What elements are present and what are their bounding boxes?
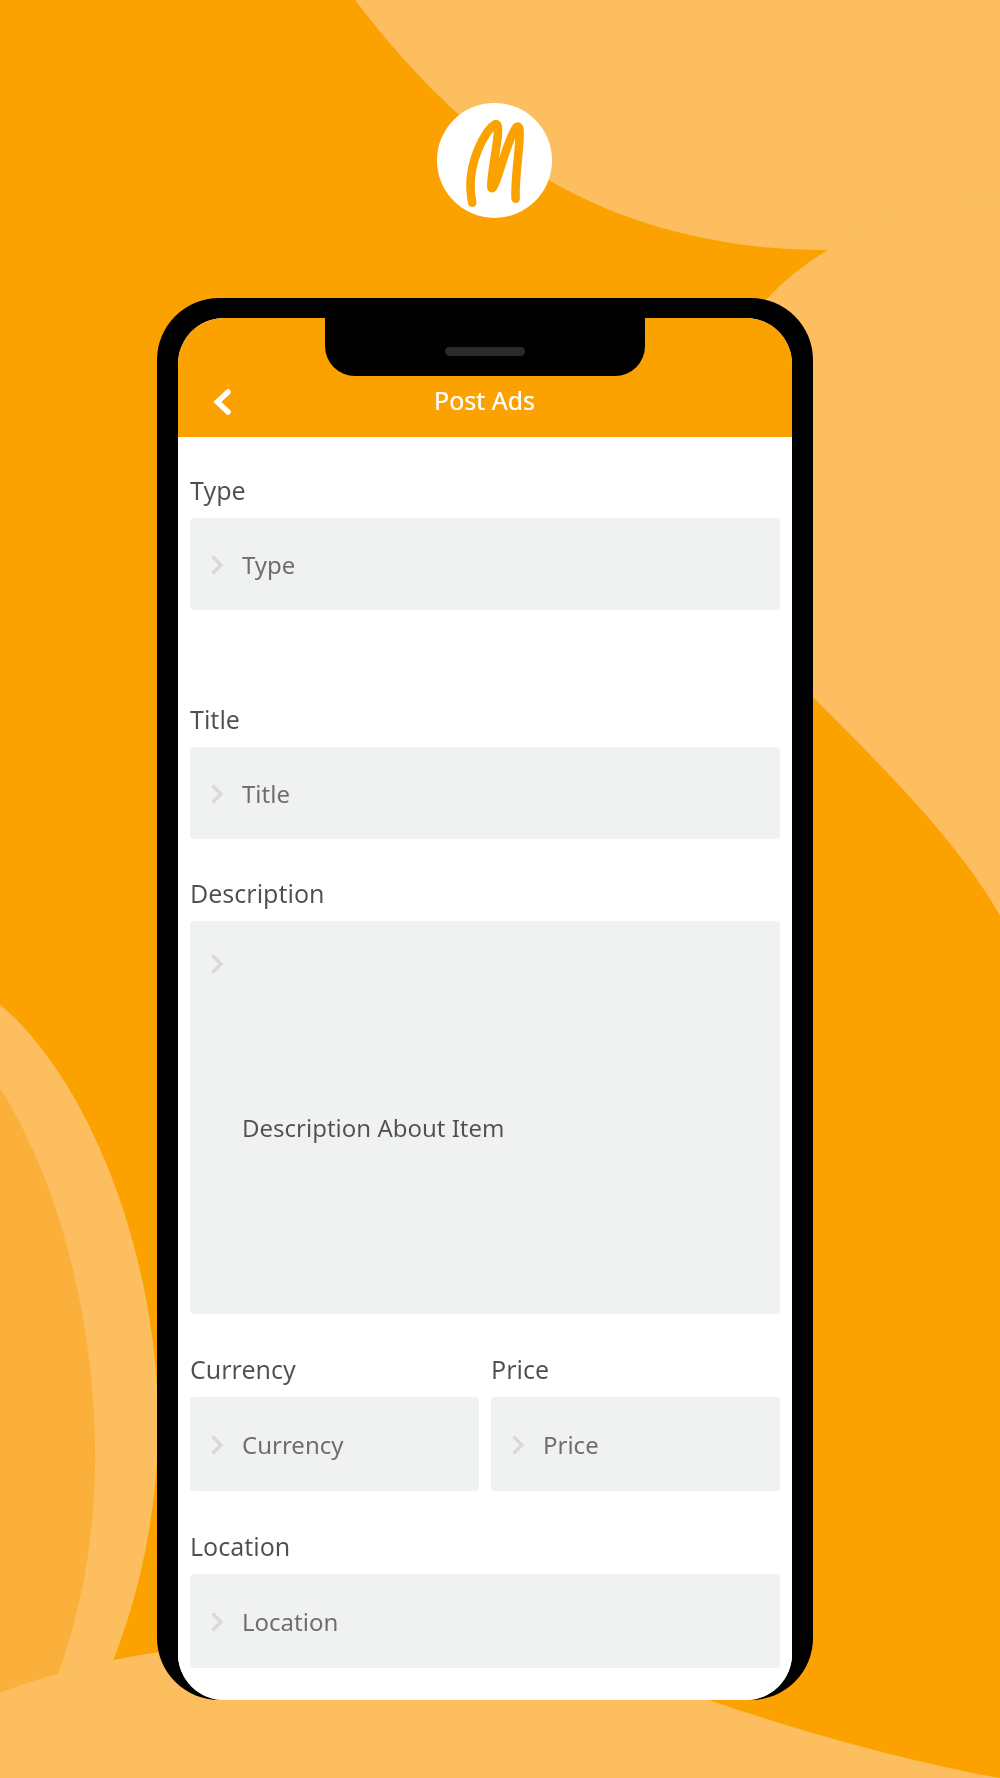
staticText: Currency — [242, 1428, 344, 1461]
staticText: Title — [242, 777, 290, 810]
staticText: Description About Item — [242, 1111, 505, 1144]
staticText: Type — [190, 473, 246, 507]
staticText: Post Ads — [434, 383, 536, 417]
staticText: Type — [242, 548, 296, 581]
button[interactable]: Price — [491, 1397, 780, 1491]
button[interactable]: Title — [190, 747, 780, 839]
staticText: Location — [242, 1605, 339, 1638]
button[interactable]: Back — [194, 373, 252, 431]
staticText: Description — [190, 876, 325, 910]
staticText: Price — [491, 1352, 780, 1386]
staticText: Price — [543, 1428, 599, 1461]
staticText: Currency — [190, 1352, 479, 1386]
staticText: Location — [190, 1529, 291, 1563]
button[interactable]: Type — [190, 518, 780, 610]
button[interactable]: Currency — [190, 1397, 479, 1491]
staticText: Title — [190, 702, 240, 736]
button[interactable]: Location — [190, 1574, 780, 1668]
button[interactable]: Description About Item — [190, 921, 780, 1314]
